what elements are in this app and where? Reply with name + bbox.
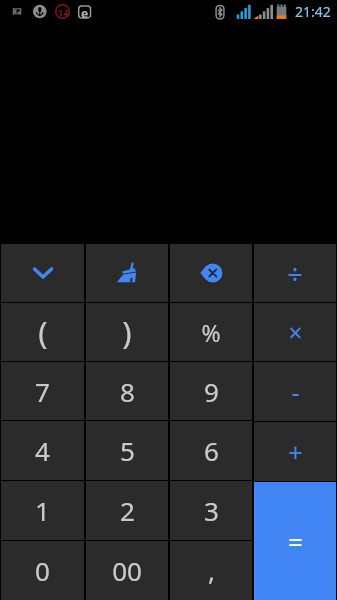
staticText: 2 <box>120 493 135 528</box>
staticText: 3 <box>204 493 219 528</box>
button[interactable]: 00 <box>86 541 168 600</box>
other: Collapse <box>31 261 55 285</box>
staticText: × <box>288 315 303 349</box>
button[interactable]: 9 <box>170 362 252 420</box>
button[interactable]: 5 <box>86 421 168 480</box>
other: Backspace <box>199 261 223 285</box>
staticText: 21:42 <box>295 2 331 21</box>
staticText: 9 <box>204 374 219 409</box>
staticText: + <box>288 434 303 469</box>
staticText: 5 <box>120 433 135 468</box>
button[interactable]: - <box>254 362 336 421</box>
other: Clear all <box>114 260 141 287</box>
staticText: - <box>291 375 300 409</box>
button[interactable]: + <box>254 422 336 481</box>
staticText: ) <box>122 311 132 353</box>
button[interactable]: Collapse <box>1 244 84 302</box>
button[interactable]: ÷ <box>254 244 336 302</box>
staticText: 7 <box>35 374 50 409</box>
staticText: 8 <box>120 374 135 409</box>
staticText: e <box>81 5 89 19</box>
button[interactable]: = <box>254 482 336 600</box>
staticText: 4 <box>35 433 50 468</box>
button[interactable]: 7 <box>1 362 84 420</box>
staticText: 6 <box>204 433 219 468</box>
button[interactable]: ( <box>1 303 84 361</box>
button[interactable]: 0 <box>1 541 84 600</box>
button[interactable]: % <box>170 303 252 361</box>
staticText: , <box>208 553 215 588</box>
button[interactable]: Backspace <box>170 244 252 302</box>
staticText: 1 <box>35 493 50 528</box>
staticText: = <box>288 524 303 559</box>
button[interactable]: 4 <box>1 421 84 480</box>
staticText: 14 <box>58 6 69 18</box>
button[interactable]: , <box>170 541 252 600</box>
staticText: ÷ <box>287 255 303 292</box>
staticText: 0 <box>35 553 50 588</box>
button[interactable]: 8 <box>86 362 168 420</box>
staticText: 00 <box>112 553 142 588</box>
staticText: % <box>201 317 221 348</box>
button[interactable]: 2 <box>86 481 168 540</box>
button[interactable]: 6 <box>170 421 252 480</box>
staticText: ( <box>38 311 48 353</box>
button[interactable]: Clear all <box>86 244 168 302</box>
button[interactable]: × <box>254 303 336 361</box>
button[interactable]: ) <box>86 303 168 361</box>
button[interactable]: 3 <box>170 481 252 540</box>
button[interactable]: 1 <box>1 481 84 540</box>
